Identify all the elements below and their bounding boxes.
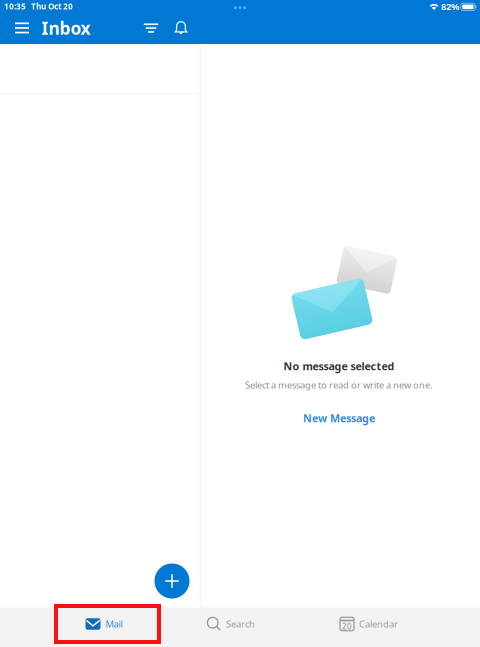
- staticText: Calendar: [359, 618, 398, 630]
- staticText: Mail: [105, 618, 122, 630]
- button[interactable]: 20: [314, 605, 424, 643]
- button[interactable]: Compose: [154, 563, 189, 598]
- staticText: New Message: [303, 411, 375, 425]
- button[interactable]: Search: [176, 605, 286, 643]
- staticText: 20: [342, 621, 352, 632]
- staticText: No message selected: [283, 359, 394, 373]
- button[interactable]: New Message: [293, 406, 385, 430]
- staticText: Search: [226, 618, 255, 630]
- staticText: Thu Oct 20: [31, 1, 73, 12]
- staticText: Inbox: [41, 16, 90, 39]
- staticText: 82%: [441, 0, 459, 13]
- button[interactable]: Menu: [7, 14, 37, 42]
- button[interactable]: Notifications: [167, 14, 195, 42]
- button[interactable]: Filter: [137, 14, 165, 42]
- staticText: Select a message to read or write a new …: [245, 379, 433, 391]
- staticText: 10:35: [4, 1, 26, 12]
- button[interactable]: Mail: [54, 605, 154, 643]
